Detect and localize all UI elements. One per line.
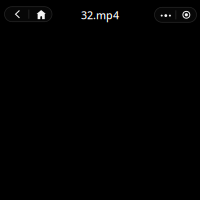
button[interactable]: Home xyxy=(29,7,52,22)
button[interactable]: Close xyxy=(176,7,196,22)
button[interactable]: More xyxy=(154,7,175,22)
staticText: 32.mp4 xyxy=(81,8,119,22)
button[interactable]: Back xyxy=(4,7,28,22)
